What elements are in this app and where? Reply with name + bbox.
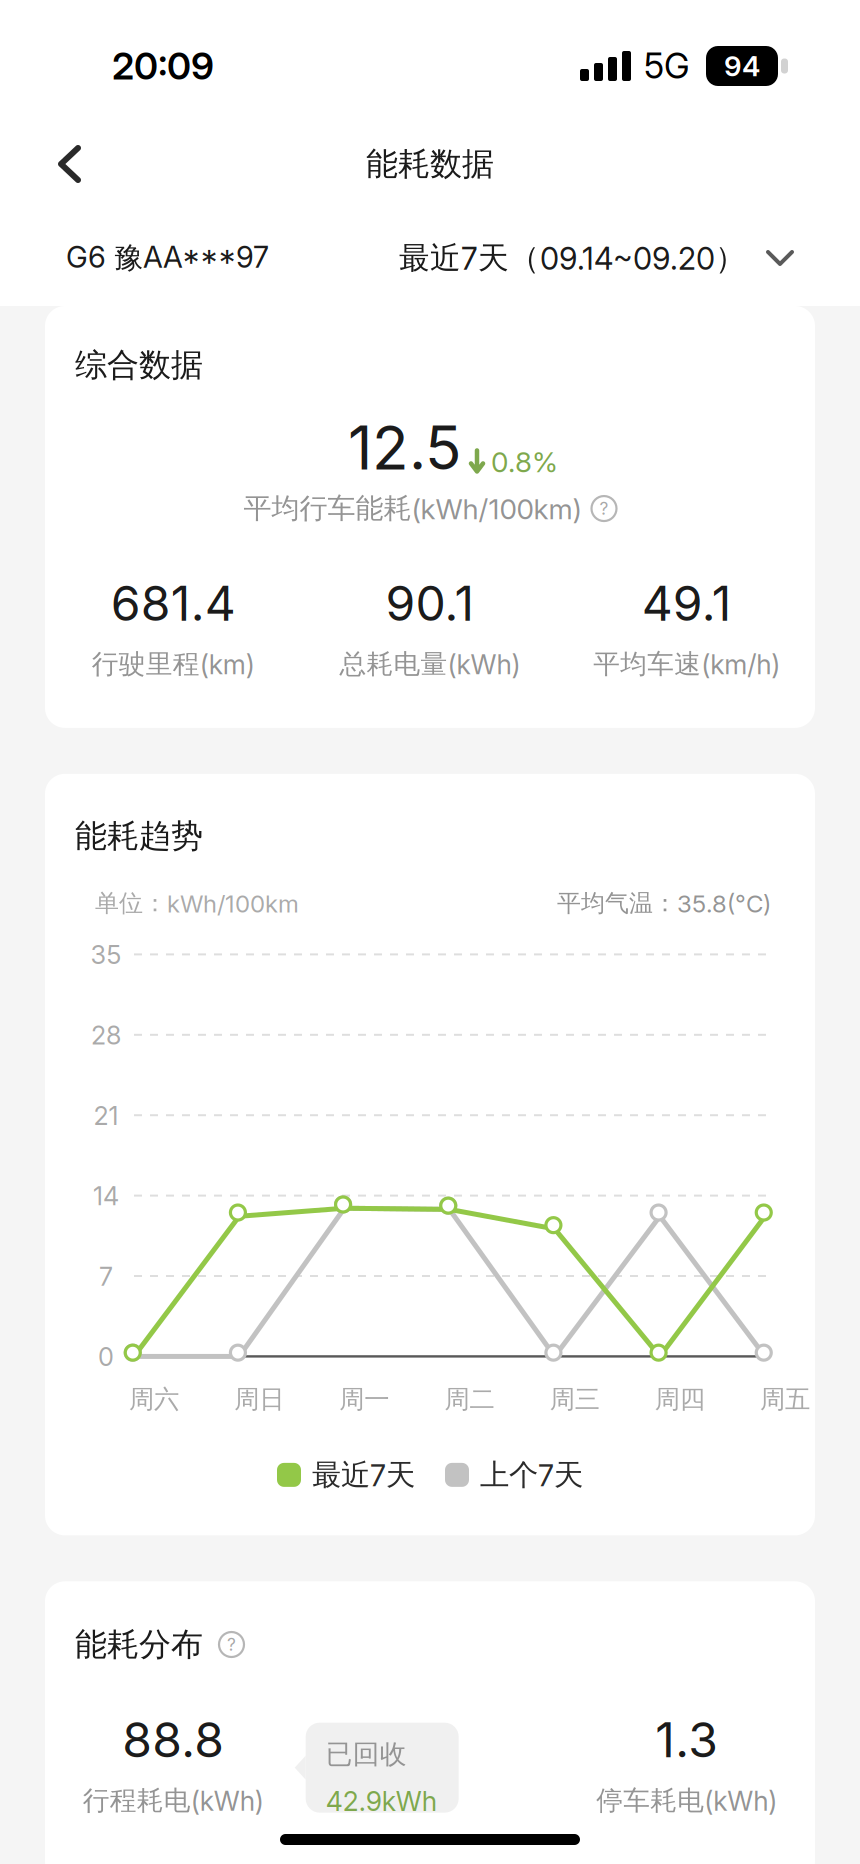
staticText: 能耗趋势 xyxy=(75,816,203,856)
staticText: 94 xyxy=(724,49,760,83)
staticText: 单位：kWh/100km xyxy=(95,888,299,918)
staticText: 平均行车能耗(kWh/100km) xyxy=(243,491,581,526)
staticText: 42.9kWh xyxy=(326,1785,437,1818)
staticText: 0.8% xyxy=(491,445,558,479)
staticText: 平均车速(km/h) xyxy=(593,647,780,681)
staticText: 49.1 xyxy=(642,574,732,632)
staticText: 最近7天（09.14~09.20） xyxy=(399,239,746,277)
staticText: 行驶里程(km) xyxy=(92,647,255,681)
staticText: 90.1 xyxy=(385,574,474,632)
staticText: 0 xyxy=(98,1342,114,1372)
staticText: 周三 xyxy=(550,1383,600,1415)
staticText: 周五 xyxy=(760,1383,810,1415)
staticText: 20:09 xyxy=(112,43,214,89)
staticText: 35 xyxy=(90,940,121,970)
staticText: 周二 xyxy=(444,1383,494,1415)
staticText: 已回收 xyxy=(326,1738,407,1771)
staticText: 总耗电量(kWh) xyxy=(339,647,520,681)
staticText: 最近7天 xyxy=(312,1456,415,1493)
staticText: 综合数据 xyxy=(75,345,203,385)
staticText: 平均气温：35.8(°C) xyxy=(557,888,771,918)
staticText: 行程耗电(kWh) xyxy=(83,1784,264,1817)
button[interactable]: 最近7天（09.14~09.20） xyxy=(399,219,794,297)
staticText: 周一 xyxy=(339,1383,389,1415)
staticText: 能耗数据 xyxy=(366,144,494,184)
staticText: G6 豫AA***97 xyxy=(66,239,269,276)
staticText: 上个7天 xyxy=(480,1456,583,1493)
staticText: 88.8 xyxy=(122,1711,224,1769)
staticText: 停车耗电(kWh) xyxy=(596,1784,777,1817)
staticText: 周六 xyxy=(129,1383,179,1415)
staticText: 12.5 xyxy=(348,411,461,484)
staticText: 14 xyxy=(93,1181,119,1211)
staticText: 能耗分布 xyxy=(75,1624,203,1665)
staticText: 5G xyxy=(644,45,690,87)
staticText: 1.3 xyxy=(655,1711,718,1769)
staticText: ? xyxy=(227,1634,236,1655)
staticText: ? xyxy=(599,498,608,519)
staticText: 28 xyxy=(91,1020,121,1051)
button[interactable]: 返回 xyxy=(0,119,117,209)
staticText: 7 xyxy=(99,1261,113,1292)
staticText: 21 xyxy=(93,1100,118,1131)
staticText: 周日 xyxy=(234,1383,284,1415)
staticText: 681.4 xyxy=(111,574,236,632)
staticText: 周四 xyxy=(655,1383,705,1415)
